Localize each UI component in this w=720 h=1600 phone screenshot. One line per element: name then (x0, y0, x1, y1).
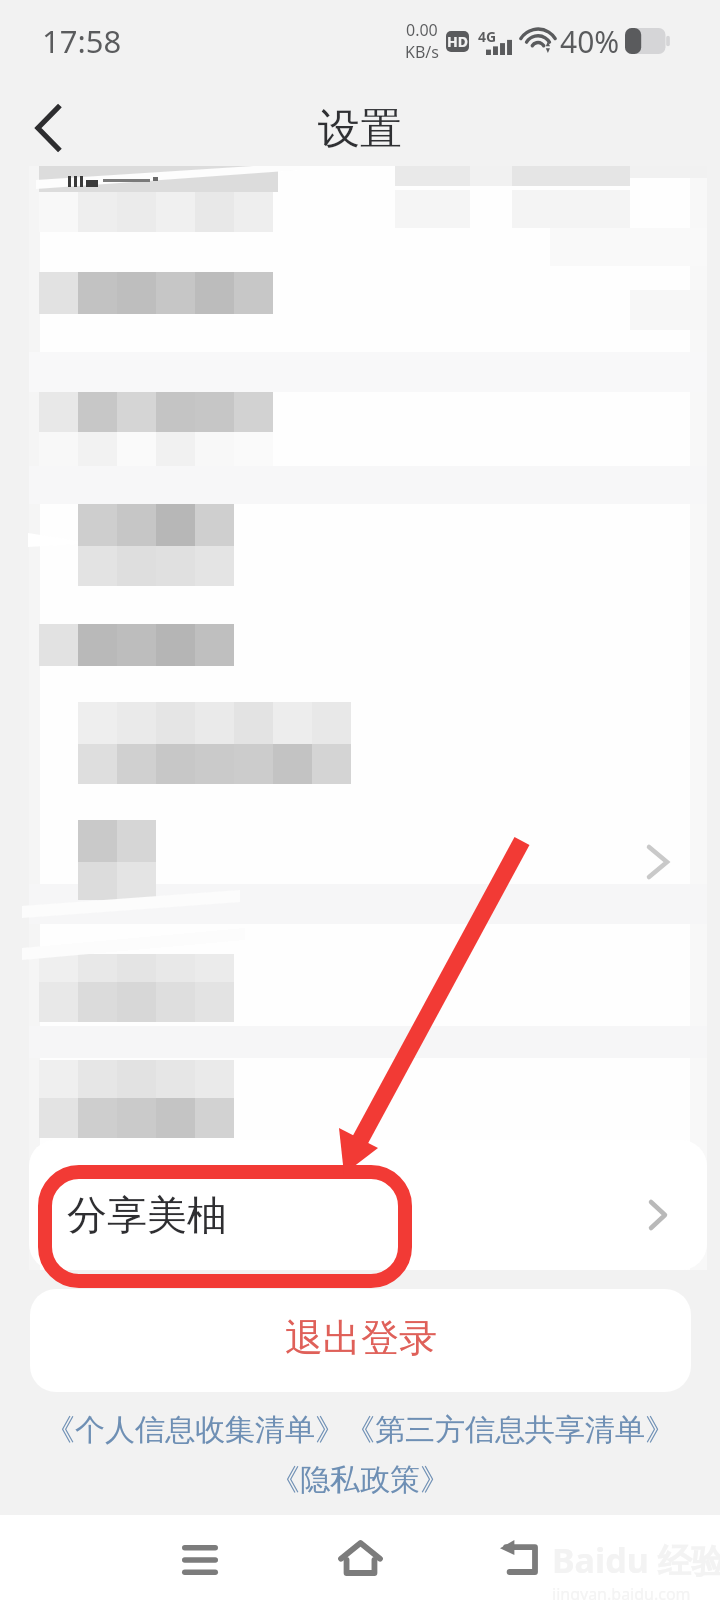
staticText: 17:58 (42, 20, 122, 62)
button[interactable]: 分享美柚 (29, 1160, 691, 1270)
staticText: 分享美柚 (67, 1190, 227, 1240)
staticText: 40% (560, 21, 620, 62)
staticText: KB/s (405, 41, 439, 63)
button[interactable]: 《个人信息收集清单》 (45, 1411, 345, 1449)
staticText: 4G (478, 27, 497, 46)
button[interactable]: 《隐私政策》 (270, 1461, 450, 1499)
button[interactable]: Recents (140, 1515, 260, 1600)
staticText: 0.00 (406, 19, 438, 41)
staticText: 退出登录 (285, 1314, 437, 1362)
staticText: jingyan.baidu.com (552, 1583, 691, 1600)
button[interactable]: 《第三方信息共享清单》 (345, 1411, 675, 1449)
button[interactable]: Back (16, 96, 80, 160)
staticText: 设置 (318, 103, 402, 156)
button[interactable]: 退出登录 (30, 1289, 691, 1392)
staticText: HD (447, 32, 468, 51)
button[interactable]: Back (460, 1515, 580, 1600)
button[interactable]: Home (300, 1515, 420, 1600)
staticText: Baidu 经验 (552, 1537, 720, 1583)
